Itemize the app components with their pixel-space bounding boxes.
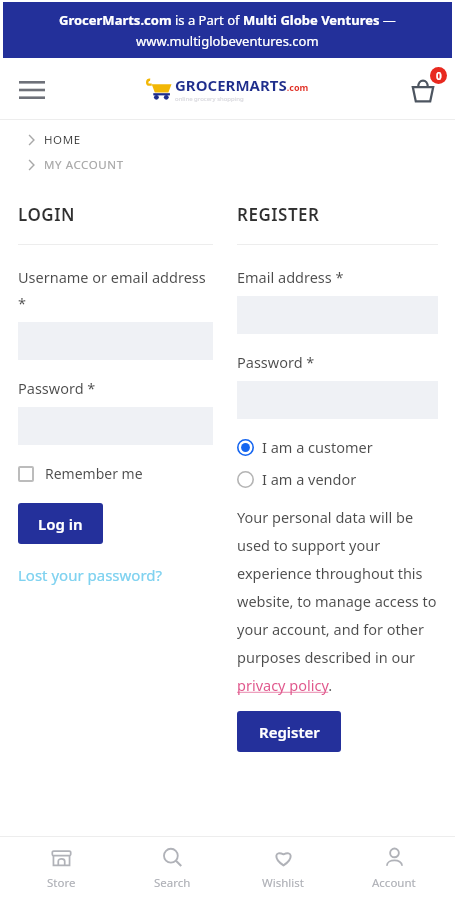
- button[interactable]: HOME: [28, 132, 81, 148]
- button[interactable]: Wishlist: [233, 846, 333, 891]
- staticText: HOME: [44, 132, 81, 148]
- staticText: Username or email address *: [18, 267, 213, 313]
- button[interactable]: Register: [237, 711, 341, 752]
- staticText: www.multiglobeventures.com: [136, 32, 319, 50]
- staticText: Search: [154, 875, 191, 891]
- staticText: LOGIN: [18, 203, 75, 226]
- button[interactable]: Remember me: [18, 464, 143, 483]
- button[interactable]: I am a vendor: [237, 469, 357, 489]
- staticText: Your personal data will be used to suppo…: [237, 507, 438, 695]
- staticText: Log in: [38, 514, 83, 534]
- staticText: REGISTER: [237, 203, 320, 226]
- staticText: Password *: [237, 352, 315, 372]
- staticText: Account: [372, 875, 416, 891]
- staticText: 0: [436, 69, 442, 83]
- button[interactable]: Log in: [18, 503, 103, 544]
- button[interactable]: Menu: [14, 72, 50, 108]
- staticText: Password *: [18, 378, 96, 398]
- staticText: Register: [259, 722, 320, 742]
- button[interactable]: Search: [122, 846, 222, 891]
- staticText: Wishlist: [262, 875, 304, 891]
- staticText: Email address *: [237, 267, 344, 287]
- staticText: Remember me: [45, 464, 143, 483]
- button[interactable]: Account: [344, 846, 444, 891]
- button[interactable]: Store: [11, 846, 111, 891]
- staticText: MY ACCOUNT: [44, 157, 124, 173]
- staticText: GrocerMarts.com is a Part of Multi Globe…: [59, 11, 396, 29]
- staticText: GROCERMARTS.com: [175, 75, 309, 95]
- staticText: online grocery shopping: [175, 95, 244, 103]
- button[interactable]: I am a customer: [237, 437, 373, 457]
- button[interactable]: Lost your password?: [18, 565, 163, 585]
- button[interactable]: MY ACCOUNT: [28, 157, 124, 173]
- button[interactable]: Cart: [403, 70, 443, 110]
- staticText: Store: [47, 875, 76, 891]
- staticText: I am a vendor: [262, 469, 357, 489]
- staticText: I am a customer: [262, 437, 373, 457]
